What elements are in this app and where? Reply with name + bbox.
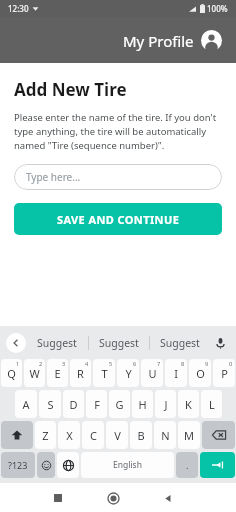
button[interactable]: Home — [100, 485, 126, 511]
staticText: X — [66, 428, 73, 443]
button[interactable]: Z — [35, 421, 56, 449]
staticText: U — [148, 366, 157, 381]
button[interactable]: Back — [155, 485, 181, 511]
staticText: ?123 — [8, 459, 28, 471]
staticText: F — [94, 397, 100, 412]
staticText: S — [47, 397, 54, 412]
staticText: K — [185, 397, 192, 412]
staticText: 9 — [205, 360, 209, 367]
staticText: H — [138, 397, 147, 412]
staticText: V — [114, 428, 121, 443]
button[interactable]: Previous suggestions — [6, 333, 26, 353]
button[interactable]: C — [82, 421, 104, 449]
staticText: L — [209, 397, 215, 412]
button[interactable]: ?123 — [1, 452, 35, 478]
button[interactable]: Backspace — [202, 421, 235, 449]
button[interactable]: Suggest — [88, 326, 149, 359]
button[interactable]: F — [86, 390, 107, 418]
staticText: Z — [42, 428, 49, 443]
staticText: English — [113, 459, 142, 471]
button[interactable]: Y — [117, 359, 139, 387]
staticText: A — [22, 397, 30, 412]
staticText: . — [186, 459, 189, 471]
button[interactable]: Type here... — [14, 164, 222, 190]
staticText: 8 — [181, 360, 185, 367]
button[interactable]: A — [15, 390, 37, 418]
button[interactable]: Q — [1, 359, 22, 387]
staticText: N — [161, 428, 170, 443]
staticText: 1 — [16, 360, 20, 367]
staticText: 0 — [229, 360, 233, 367]
staticText: B — [137, 428, 145, 443]
button[interactable]: P — [213, 359, 235, 387]
button[interactable]: M — [178, 421, 200, 449]
staticText: 2 — [39, 360, 43, 367]
staticText: P — [221, 366, 228, 381]
staticText: 5 — [109, 360, 113, 367]
staticText: D — [69, 397, 78, 412]
button[interactable]: B — [130, 421, 152, 449]
staticText: 7 — [157, 360, 161, 367]
button[interactable]: . — [176, 452, 198, 478]
staticText: O — [196, 366, 205, 381]
staticText: Type here... — [26, 170, 81, 184]
button[interactable]: W — [24, 359, 45, 387]
button[interactable]: Suggest — [149, 326, 210, 359]
staticText: Suggest — [99, 336, 139, 350]
button[interactable]: K — [178, 390, 199, 418]
button[interactable]: SAVE AND CONTINUE — [14, 203, 222, 235]
staticText: 4 — [85, 360, 89, 367]
button[interactable]: Change language — [57, 452, 79, 478]
button[interactable]: U — [141, 359, 163, 387]
button[interactable]: Recent apps — [45, 485, 71, 511]
staticText: C — [90, 428, 97, 443]
button[interactable]: X — [58, 421, 80, 449]
button[interactable]: Voice input — [210, 333, 230, 353]
staticText: J — [164, 397, 168, 412]
staticText: T — [101, 366, 108, 381]
staticText: Suggest — [160, 336, 200, 350]
button[interactable]: N — [154, 421, 176, 449]
button[interactable]: S — [39, 390, 61, 418]
button[interactable]: My Profile — [119, 26, 226, 55]
button[interactable]: Emoji — [37, 452, 55, 478]
staticText: 6 — [133, 360, 137, 367]
staticText: E — [54, 366, 61, 381]
staticText: Please enter the name of the tire. If yo… — [14, 111, 222, 152]
button[interactable]: G — [109, 390, 130, 418]
staticText: G — [115, 397, 124, 412]
button[interactable]: R — [70, 359, 91, 387]
staticText: 100% — [207, 3, 228, 14]
staticText: R — [77, 366, 84, 381]
button[interactable]: H — [132, 390, 153, 418]
button[interactable]: O — [189, 359, 211, 387]
button[interactable]: Suggest — [26, 326, 88, 359]
staticText: SAVE AND CONTINUE — [57, 212, 180, 227]
staticText: M — [184, 428, 194, 443]
staticText: I — [174, 366, 178, 381]
button[interactable]: Enter — [200, 452, 235, 478]
button[interactable]: I — [165, 359, 187, 387]
button[interactable]: D — [63, 390, 84, 418]
staticText: My Profile — [123, 31, 194, 51]
button[interactable]: V — [106, 421, 128, 449]
staticText: 12:30 — [8, 3, 29, 14]
button[interactable]: L — [201, 390, 222, 418]
button[interactable]: J — [155, 390, 176, 418]
staticText: Suggest — [37, 336, 77, 350]
staticText: 3 — [62, 360, 66, 367]
button[interactable]: Shift — [1, 421, 33, 449]
button[interactable]: English — [81, 452, 174, 478]
staticText: W — [29, 366, 40, 381]
staticText: Q — [7, 366, 16, 381]
staticText: Add New Tire — [14, 78, 127, 101]
staticText: Y — [125, 366, 132, 381]
button[interactable]: T — [93, 359, 115, 387]
button[interactable]: E — [47, 359, 68, 387]
